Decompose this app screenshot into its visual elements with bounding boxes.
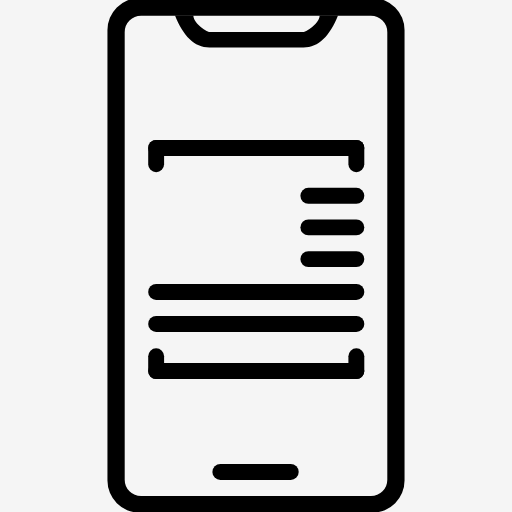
button[interactable]: Smartphone showing a text document: [0, 0, 512, 512]
